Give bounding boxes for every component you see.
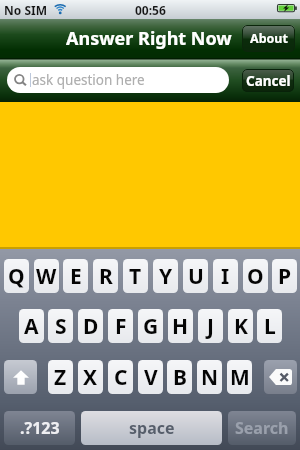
- button[interactable]: Q: [4, 259, 29, 293]
- button[interactable]: R: [93, 259, 118, 293]
- staticText: S: [55, 312, 67, 341]
- button[interactable]: Backspace: [264, 360, 297, 394]
- button[interactable]: I: [213, 259, 238, 293]
- staticText: .?123: [20, 417, 60, 439]
- button[interactable]: T: [123, 259, 148, 293]
- button[interactable]: V: [138, 360, 163, 394]
- button[interactable]: Search: [228, 411, 296, 445]
- button[interactable]: M: [227, 360, 252, 394]
- staticText: U: [188, 262, 204, 291]
- staticText: 00:56: [135, 2, 166, 18]
- button[interactable]: X: [78, 360, 103, 394]
- staticText: B: [173, 363, 187, 392]
- button[interactable]: Z: [48, 360, 73, 394]
- button[interactable]: H: [168, 309, 193, 343]
- button[interactable]: Cancel: [242, 69, 294, 92]
- button[interactable]: .?123: [4, 411, 75, 445]
- staticText: Q: [8, 262, 25, 291]
- button[interactable]: space: [81, 411, 222, 445]
- staticText: G: [143, 312, 159, 341]
- staticText: K: [234, 312, 248, 341]
- staticText: N: [201, 363, 219, 392]
- button[interactable]: G: [138, 309, 163, 343]
- staticText: Search: [235, 417, 289, 439]
- staticText: D: [83, 312, 99, 341]
- staticText: I: [221, 262, 230, 291]
- staticText: E: [70, 262, 82, 291]
- staticText: L: [264, 312, 276, 341]
- button[interactable]: S: [48, 309, 73, 343]
- button[interactable]: D: [78, 309, 103, 343]
- button[interactable]: O: [243, 259, 268, 293]
- staticText: P: [278, 262, 292, 291]
- staticText: C: [114, 363, 128, 392]
- button[interactable]: P: [272, 259, 297, 293]
- button[interactable]: C: [108, 360, 133, 394]
- button[interactable]: Shift: [4, 360, 37, 394]
- staticText: H: [172, 312, 189, 341]
- staticText: M: [230, 363, 250, 392]
- staticText: W: [36, 262, 57, 291]
- staticText: About: [250, 30, 288, 47]
- button[interactable]: J: [198, 309, 223, 343]
- staticText: Y: [159, 262, 173, 291]
- staticText: T: [129, 262, 142, 291]
- button[interactable]: E: [63, 259, 88, 293]
- staticText: J: [207, 312, 214, 341]
- button[interactable]: L: [257, 309, 282, 343]
- staticText: space: [129, 417, 175, 439]
- staticText: V: [144, 363, 158, 392]
- button[interactable]: Y: [153, 259, 178, 293]
- button[interactable]: About: [242, 25, 295, 52]
- button[interactable]: ask question here: [7, 67, 229, 93]
- staticText: O: [247, 262, 264, 291]
- staticText: No SIM: [4, 2, 47, 18]
- button[interactable]: F: [108, 309, 133, 343]
- staticText: X: [83, 363, 98, 392]
- button[interactable]: A: [19, 309, 44, 343]
- staticText: R: [99, 262, 113, 291]
- button[interactable]: W: [34, 259, 59, 293]
- staticText: Z: [54, 363, 67, 392]
- staticText: Answer Right Now: [66, 26, 232, 51]
- button[interactable]: B: [167, 360, 192, 394]
- button[interactable]: N: [197, 360, 222, 394]
- button[interactable]: K: [228, 309, 253, 343]
- staticText: F: [115, 312, 127, 341]
- button[interactable]: U: [183, 259, 208, 293]
- staticText: A: [24, 312, 39, 341]
- staticText: ask question here: [32, 71, 145, 89]
- staticText: Cancel: [246, 72, 291, 90]
